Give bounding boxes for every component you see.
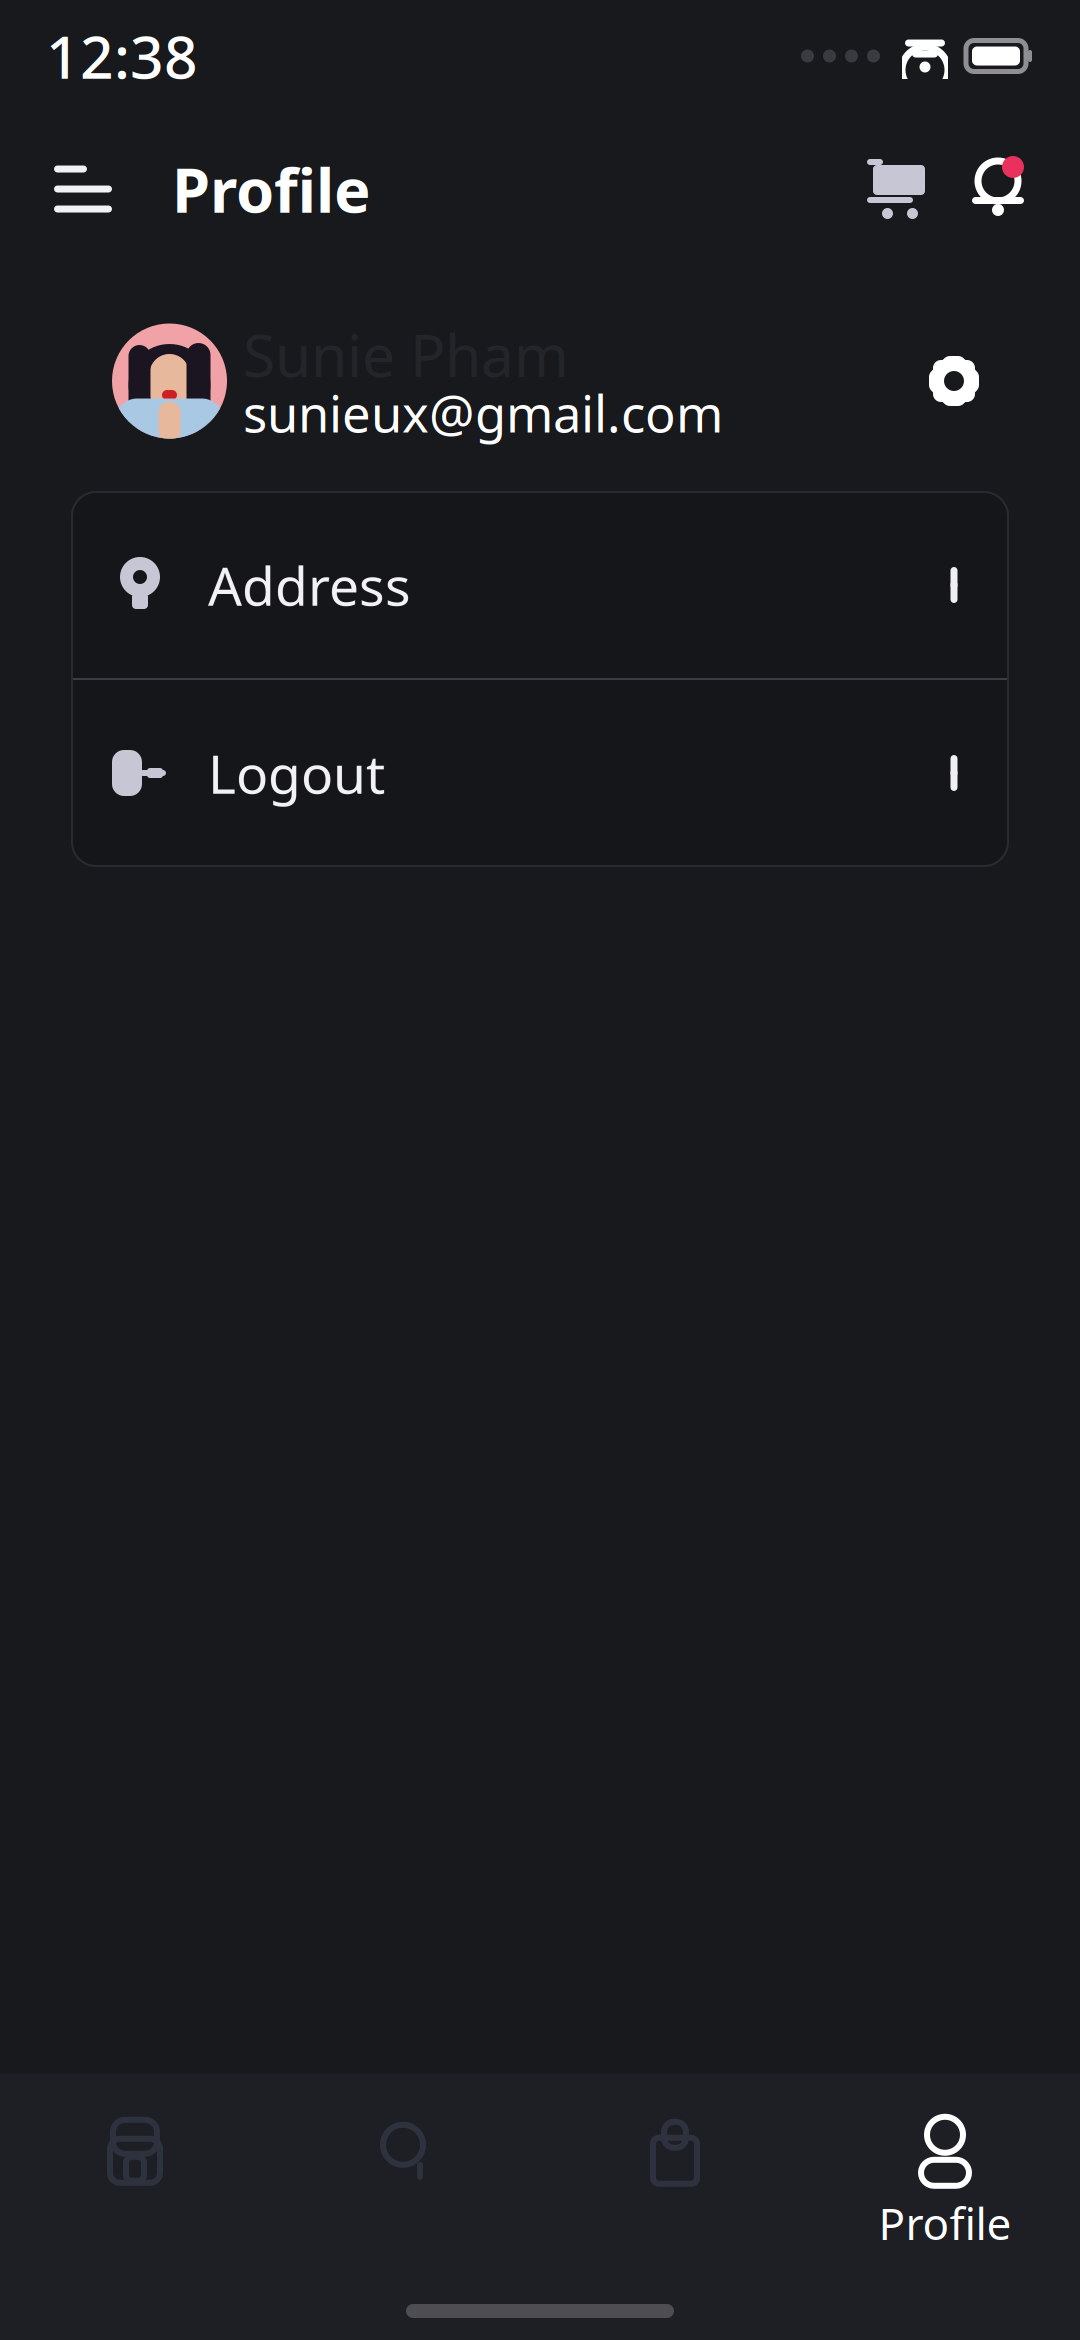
staticText: Logout	[208, 738, 385, 808]
button[interactable]: Address	[72, 492, 1008, 678]
staticText: sunieux@gmail.com	[243, 379, 723, 447]
button[interactable]: Settings	[914, 341, 994, 421]
staticText: 12:38	[46, 17, 198, 95]
staticText: Address	[208, 550, 411, 620]
button[interactable]: Menu	[44, 149, 124, 229]
staticText: Profile	[878, 2194, 1011, 2252]
button[interactable]: Notifications	[960, 149, 1036, 229]
button[interactable]: Home	[0, 2113, 270, 2253]
staticText: Profile	[172, 148, 371, 230]
button[interactable]: Cart	[858, 149, 934, 229]
staticText: Sunie Pham	[243, 315, 569, 393]
button[interactable]: Shop	[540, 2113, 810, 2253]
button[interactable]: Profile	[810, 2113, 1080, 2253]
button[interactable]: Logout	[72, 680, 1008, 866]
button[interactable]: Search	[270, 2113, 540, 2253]
